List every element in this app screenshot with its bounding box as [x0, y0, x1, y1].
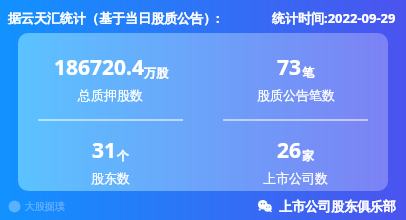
button[interactable]: 31: [18, 136, 203, 186]
staticText: 个: [117, 148, 129, 163]
staticText: 上市公司股东俱乐部: [279, 198, 396, 214]
staticText: 据云天汇统计（基于当日股质公告）:: [8, 9, 220, 27]
staticText: 笔: [302, 65, 314, 80]
staticText: 上市公司数: [263, 170, 328, 186]
button[interactable]: WeChat: [257, 198, 396, 214]
other: WeChat: [257, 198, 273, 214]
staticText: 万股: [144, 65, 168, 80]
button[interactable]: 26: [203, 136, 388, 186]
button[interactable]: 73: [203, 53, 388, 103]
staticText: 总质押股数: [78, 87, 143, 103]
button[interactable]: 大股掘璞 logo: [8, 200, 65, 213]
button[interactable]: 186720.4: [18, 53, 203, 103]
staticText: 大股掘璞: [25, 200, 65, 213]
staticText: 73: [277, 53, 302, 82]
staticText: 186720.4: [54, 53, 144, 82]
staticText: 股东数: [91, 170, 130, 186]
staticText: 31: [92, 136, 117, 165]
staticText: 统计时间:2022-09-29: [272, 9, 396, 27]
staticText: 家: [302, 148, 314, 163]
staticText: 股质公告笔数: [257, 87, 335, 103]
staticText: 26: [277, 136, 302, 165]
